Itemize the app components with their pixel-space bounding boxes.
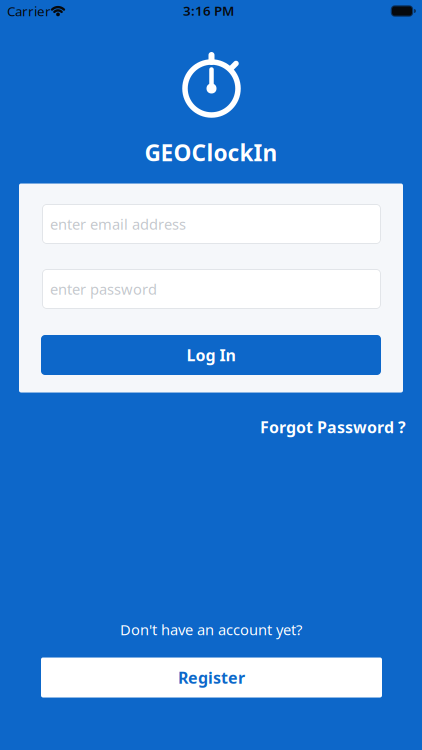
staticText: Don't have an account yet?	[120, 620, 302, 639]
staticText: Forgot Password ?	[260, 416, 406, 438]
button[interactable]: enter email address	[42, 204, 381, 244]
staticText: 3:16 PM	[183, 2, 234, 19]
button[interactable]: Forgot Password ?	[260, 416, 406, 438]
staticText: GEOClockIn	[144, 137, 277, 167]
staticText: Register	[178, 667, 245, 688]
staticText: enter email address	[50, 214, 186, 234]
button[interactable]: enter password	[42, 269, 381, 309]
staticText: Carrier	[7, 2, 51, 20]
staticText: Log In	[186, 344, 235, 366]
button[interactable]: Register	[41, 657, 382, 697]
button[interactable]: Log In	[41, 335, 381, 375]
staticText: enter password	[50, 279, 157, 299]
